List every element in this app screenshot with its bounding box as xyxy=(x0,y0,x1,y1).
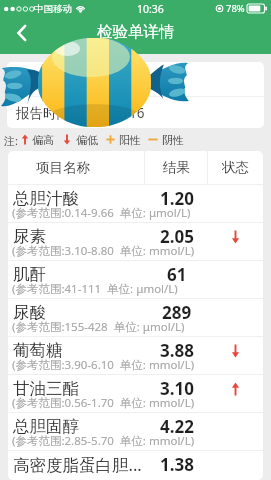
staticText: 阴性 xyxy=(162,133,184,146)
staticText: 高密度脂蛋白胆... xyxy=(13,453,142,476)
staticText: 尿酸 xyxy=(13,302,46,323)
staticText: 289 xyxy=(162,301,192,324)
staticText: 肌酐 xyxy=(13,264,46,285)
staticText: 61 xyxy=(167,263,187,286)
staticText: 状态 xyxy=(222,159,249,176)
staticText: 注: xyxy=(4,133,18,146)
staticText: 偏低 xyxy=(76,133,98,146)
button[interactable]: 甘油三酯 xyxy=(8,375,263,413)
staticText: 1.20 xyxy=(160,187,194,210)
staticText: 中国移动 xyxy=(34,3,72,15)
staticText: 2.05 xyxy=(160,225,194,248)
button[interactable]: 葡萄糖 xyxy=(8,337,263,375)
staticText: (参考范围:3.90-6.10 单位: mmol/L) xyxy=(12,357,195,373)
staticText: (参考范围:0.56-1.70 单位: mmol/L) xyxy=(12,395,195,411)
staticText: 报告时间: xyxy=(16,104,74,122)
button[interactable]: 尿酸 xyxy=(8,299,263,337)
button[interactable]: 总胆固醇 xyxy=(8,413,263,451)
staticText: (参考范围:41-111 单位: μmol/L) xyxy=(12,281,178,297)
staticText: 总胆汁酸 xyxy=(13,188,79,209)
button[interactable]: 尿素 xyxy=(8,223,263,261)
staticText: 1.38 xyxy=(160,453,194,476)
staticText: 偏高 xyxy=(32,133,54,146)
staticText: 葡萄糖 xyxy=(13,340,63,361)
staticText: (参考范围:2.85-5.70 单位: mmol/L) xyxy=(12,433,195,449)
staticText: (参考范围:3.10-8.80 单位: mmol/L) xyxy=(12,243,195,259)
staticText: 结果 xyxy=(163,159,190,176)
button[interactable]: 总胆汁酸 xyxy=(8,185,263,223)
staticText: 尿素 xyxy=(13,226,46,247)
staticText: 甘油三酯 xyxy=(13,378,79,399)
staticText: 2017-06-16 xyxy=(74,104,145,122)
staticText: 检验项目: xyxy=(16,70,74,88)
staticText: 检验单详情 xyxy=(97,22,175,42)
staticText: 4.22 xyxy=(160,415,194,438)
button[interactable]: 返回 xyxy=(6,17,38,49)
staticText: (参考范围:0.14-9.66 单位: μmol/L) xyxy=(12,205,191,221)
staticText: 78% xyxy=(226,2,245,15)
staticText: 阳性 xyxy=(119,133,141,146)
staticText: 总胆固醇 xyxy=(13,416,79,437)
staticText: 项目名称 xyxy=(36,159,90,176)
button[interactable]: 高密度脂蛋白胆... xyxy=(8,451,263,480)
staticText: 3.88 xyxy=(160,339,194,362)
staticText: 3.10 xyxy=(160,377,194,400)
button[interactable]: 肌酐 xyxy=(8,261,263,299)
staticText: (参考范围:155-428 单位: μmol/L) xyxy=(12,319,185,335)
staticText: 生化全套 xyxy=(74,71,128,88)
staticText: 10:36 xyxy=(137,2,164,16)
